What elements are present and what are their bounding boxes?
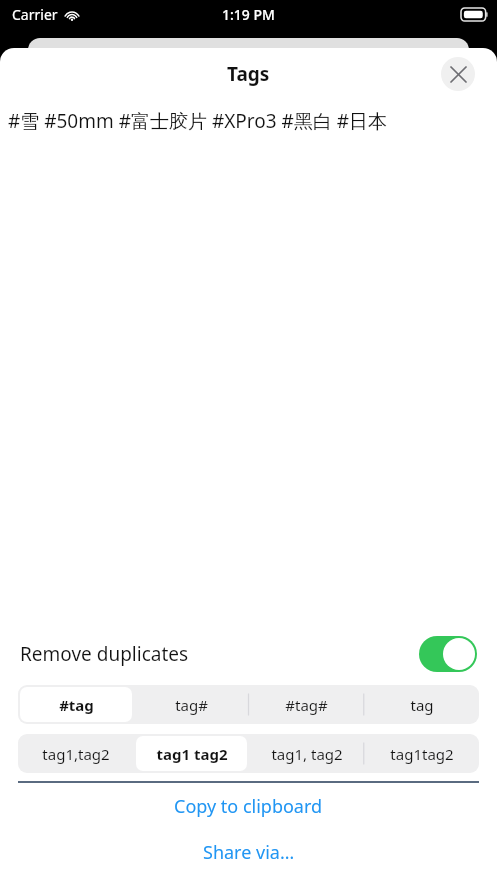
staticText: Remove duplicates [20,641,189,667]
button[interactable]: Share via… [0,829,497,875]
button[interactable]: Remove duplicates [20,632,477,676]
staticText: #tag [59,695,94,715]
staticText: tag1,tag2 [42,744,110,764]
button[interactable]: Remove duplicates toggle [419,636,477,672]
staticText: tag [410,695,434,715]
staticText: 1:19 PM [222,5,275,24]
button[interactable]: tag1tag2 [366,736,477,771]
staticText: Tags [227,61,270,87]
staticText: Carrier [12,5,58,24]
staticText: Share via… [203,840,295,865]
staticText: #雪 #50mm #富士胶片 #XPro3 #黑白 #日本 [8,108,489,134]
staticText: Copy to clipboard [174,794,323,819]
staticText: #tag# [285,695,328,715]
button[interactable]: tag# [136,687,247,722]
button[interactable]: tag1,tag2 [20,736,132,771]
button[interactable]: tag [366,687,477,722]
button[interactable]: Close [441,57,475,91]
button[interactable]: Copy to clipboard [0,783,497,829]
button[interactable]: #tag [20,687,132,722]
staticText: tag1tag2 [390,744,454,764]
staticText: tag1, tag2 [271,744,343,764]
staticText: tag1 tag2 [156,744,228,764]
staticText: tag# [175,695,208,715]
button[interactable]: tag1 tag2 [136,736,247,771]
button[interactable]: tag1, tag2 [251,736,362,771]
button[interactable]: #tag# [251,687,362,722]
